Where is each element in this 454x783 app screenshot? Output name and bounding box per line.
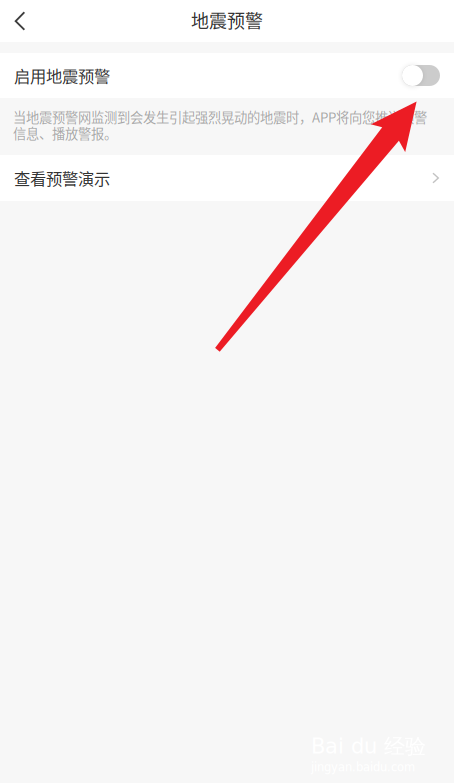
staticText: 查看预警演示 [14,166,110,190]
staticText: 当地震预警网监测到会发生引起强烈晃动的地震时，APP将向您推送预警信息、播放警报… [13,107,427,142]
button[interactable]: 返回 [0,0,40,42]
button[interactable]: 查看预警演示 [0,155,454,201]
staticText: 启用地震预警 [14,64,110,87]
button[interactable]: 启用地震预警 [0,53,454,98]
staticText: 地震预警 [191,7,263,33]
